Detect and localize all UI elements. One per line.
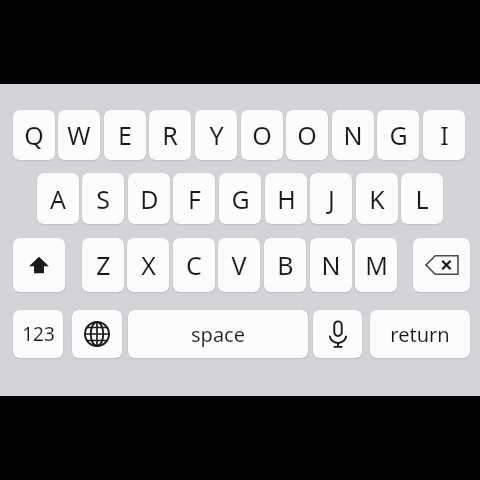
staticText: G [231, 182, 250, 216]
button[interactable]: N [332, 110, 374, 160]
button[interactable]: A [37, 173, 79, 224]
staticText: H [277, 182, 296, 216]
staticText: space [191, 321, 245, 348]
button[interactable]: K [356, 173, 398, 224]
button[interactable]: V [218, 238, 260, 292]
button[interactable]: E [104, 110, 146, 160]
staticText: Q [24, 118, 44, 152]
button[interactable]: Next keyboard [72, 310, 122, 358]
button[interactable]: B [264, 238, 306, 292]
staticText: E [118, 118, 132, 152]
button[interactable]: Q [13, 110, 55, 160]
button[interactable]: G [219, 173, 261, 224]
staticText: N [343, 118, 363, 152]
button[interactable]: space [128, 310, 308, 358]
staticText: M [365, 248, 388, 282]
staticText: W [67, 118, 91, 152]
staticText: return [390, 321, 450, 348]
button[interactable]: Z [82, 238, 124, 292]
staticText: G [389, 118, 408, 152]
staticText: A [50, 182, 66, 216]
button[interactable]: Shift [13, 238, 65, 292]
staticText: X [141, 248, 156, 282]
button[interactable]: L [401, 173, 443, 224]
button[interactable]: W [58, 110, 100, 160]
button[interactable]: F [173, 173, 215, 224]
staticText: V [231, 248, 247, 282]
button[interactable]: I [423, 110, 465, 160]
staticText: Y [209, 118, 224, 152]
button[interactable]: Y [195, 110, 237, 160]
staticText: S [96, 182, 110, 216]
staticText: D [140, 182, 159, 216]
button[interactable]: R [149, 110, 191, 160]
button[interactable]: return [370, 310, 470, 358]
staticText: J [328, 182, 335, 216]
button[interactable]: O [241, 110, 283, 160]
button[interactable]: Backspace [413, 238, 470, 292]
staticText: C [186, 248, 202, 282]
button[interactable]: N [310, 238, 352, 292]
staticText: O [252, 118, 272, 152]
staticText: F [188, 182, 201, 216]
button[interactable]: J [310, 173, 352, 224]
button[interactable]: M [355, 238, 397, 292]
button[interactable]: C [173, 238, 215, 292]
button[interactable]: 123 [13, 310, 63, 358]
button[interactable]: H [265, 173, 307, 224]
button[interactable]: S [82, 173, 124, 224]
staticText: L [415, 182, 429, 216]
button[interactable]: D [128, 173, 170, 224]
staticText: O [297, 118, 317, 152]
staticText: B [277, 248, 294, 282]
staticText: R [162, 118, 178, 152]
button[interactable]: X [127, 238, 169, 292]
staticText: I [440, 118, 449, 152]
button[interactable]: O [286, 110, 328, 160]
staticText: K [369, 182, 385, 216]
staticText: 123 [22, 321, 55, 347]
button[interactable]: G [377, 110, 419, 160]
button[interactable]: Dictation [313, 310, 362, 358]
staticText: Z [96, 248, 111, 282]
staticText: N [321, 248, 341, 282]
